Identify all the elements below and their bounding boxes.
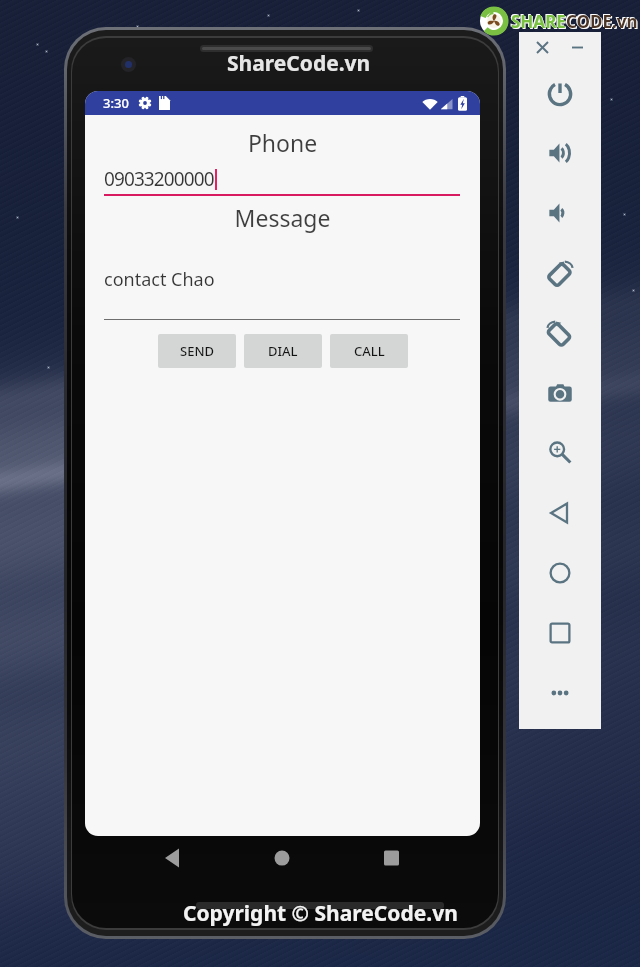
staticText: ShareCode.vn [227, 49, 371, 78]
button[interactable]: Zoom [540, 433, 580, 473]
staticText: CODE.vn [566, 10, 638, 33]
staticText: SHARE [511, 10, 566, 33]
button[interactable]: Minimize [563, 33, 591, 61]
button[interactable]: Rotate right [540, 313, 580, 353]
button[interactable]: SEND [158, 334, 236, 368]
staticText: 09033200000 [104, 166, 214, 192]
button[interactable]: CALL [330, 334, 408, 368]
button[interactable]: Home [540, 553, 580, 593]
button[interactable]: Close [528, 33, 556, 61]
staticText: 3:30 [103, 94, 129, 112]
staticText: Copyright © ShareCode.vn [183, 899, 458, 928]
staticText: contact Chao [104, 267, 215, 292]
staticText: CODE.vn [565, 9, 637, 32]
button[interactable]: Back [540, 493, 580, 533]
staticText: CALL [354, 342, 385, 360]
staticText: SHARE [512, 11, 567, 34]
button[interactable]: Power [540, 73, 580, 113]
staticText: Phone [85, 127, 480, 158]
staticText: SEND [180, 342, 214, 360]
staticText: CODE.vn [567, 11, 639, 34]
button[interactable]: Volume up [540, 133, 580, 173]
button[interactable]: Volume down [540, 193, 580, 233]
button[interactable]: Overview [540, 613, 580, 653]
button[interactable]: Rotate left [540, 253, 580, 293]
staticText: DIAL [268, 342, 298, 360]
staticText: SHARE [510, 9, 565, 32]
button[interactable]: More [540, 673, 580, 713]
button[interactable]: Take screenshot [540, 373, 580, 413]
staticText: Message [85, 202, 480, 233]
button[interactable]: DIAL [244, 334, 322, 368]
